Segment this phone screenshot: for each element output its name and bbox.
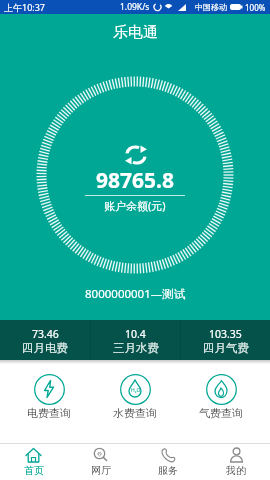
button[interactable]: 网厅 [67,443,134,480]
staticText: 98765.8 [96,166,174,195]
staticText: 电费查询 [27,406,71,420]
staticText: 73.46 [32,327,59,341]
staticText: 上午10:37 [4,1,46,13]
staticText: 103.35 [209,327,242,341]
staticText: 中国移动 [195,2,227,12]
staticText: 我的 [226,464,246,477]
staticText: H₂O [131,387,141,394]
staticText: 10.4 [125,327,146,341]
staticText: 网厅 [91,464,111,477]
button[interactable]: H₂O [92,374,178,420]
button[interactable]: 我的 [202,443,270,480]
staticText: 首页 [24,464,44,477]
staticText: 四月气费 [203,341,249,355]
staticText: 100% [245,2,266,13]
button[interactable]: 气费查询 [178,374,264,420]
button[interactable]: 首页 [0,443,67,480]
button[interactable]: 73.46 [0,320,90,360]
staticText: 8000000001—测试 [85,286,186,302]
button[interactable]: 服务 [134,443,202,480]
staticText: 水费查询 [113,406,157,420]
staticText: 乐电通 [113,23,158,42]
staticText: 服务 [158,464,178,477]
button[interactable]: 10.4 [91,320,180,360]
staticText: 1.09K/s [120,1,150,13]
button[interactable]: 103.35 [181,320,270,360]
staticText: 气费查询 [199,406,243,420]
staticText: 四月电费 [22,341,68,355]
button[interactable]: 电费查询 [6,374,92,420]
staticText: 三月水费 [113,341,159,355]
staticText: 账户余额(元) [104,198,166,213]
